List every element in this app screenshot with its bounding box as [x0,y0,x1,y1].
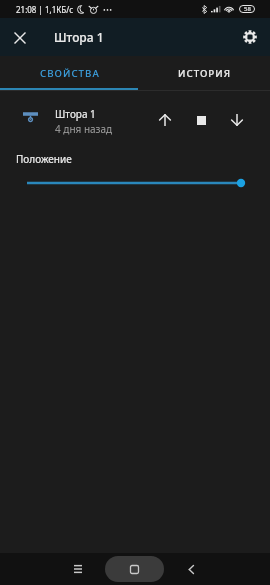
button[interactable]: СВОЙСТВА [0,56,139,88]
staticText: ИСТОРИЯ [178,67,231,80]
button[interactable]: Штора 1 [0,102,270,138]
button[interactable]: Back [175,553,207,585]
button[interactable] [0,173,270,193]
staticText: 58 [244,5,251,13]
button[interactable]: Close [0,18,38,56]
staticText: 4 дня назад [55,122,113,136]
button[interactable]: Home [105,556,164,582]
staticText: СВОЙСТВА [40,67,100,80]
button[interactable]: Settings [231,18,269,56]
staticText: Штора 1 [54,29,104,45]
button[interactable]: Open curtain [149,104,181,136]
button[interactable]: Recent apps [62,553,94,585]
staticText: Штора 1 [55,107,96,121]
button[interactable]: Stop [185,104,217,136]
button[interactable]: Close curtain [221,104,253,136]
staticText: Положение [16,152,72,166]
staticText: 21:08 | 1,1КБ/c [16,4,74,15]
button[interactable]: ИСТОРИЯ [139,56,270,88]
